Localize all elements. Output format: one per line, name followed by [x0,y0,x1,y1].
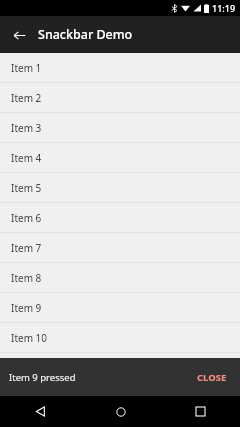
button[interactable]: Item 8 [0,263,240,293]
staticText: Item 3 [11,121,42,135]
staticText: Item 10 [11,331,48,345]
button[interactable]: Item 1 [0,53,240,83]
button[interactable]: Item 4 [0,143,240,173]
staticText: Snackbar Demo [38,26,133,43]
staticText: Item 7 [11,241,42,255]
staticText: Item 2 [11,91,42,105]
staticText: Item 6 [11,211,42,225]
button[interactable]: CLOSE [193,367,231,388]
staticText: CLOSE [197,371,227,384]
staticText: Item 5 [11,181,42,195]
button[interactable]: Item 2 [0,83,240,113]
button[interactable]: Item 10 [0,323,240,353]
staticText: 11:19 [212,2,236,14]
staticText: Item 9 [11,301,42,315]
staticText: Item 9 pressed [9,371,76,384]
staticText: Item 1 [11,61,42,75]
button[interactable]: Item 7 [0,233,240,263]
button[interactable]: Item 5 [0,173,240,203]
staticText: Item 8 [11,271,42,285]
button[interactable]: Back [6,22,32,48]
button[interactable]: Item 3 [0,113,240,143]
button[interactable]: Back [25,396,56,427]
staticText: Item 4 [11,151,42,165]
button[interactable]: Item 9 [0,293,240,323]
button[interactable]: Recents [185,396,216,427]
button[interactable]: Home [105,396,136,427]
button[interactable]: Item 6 [0,203,240,233]
